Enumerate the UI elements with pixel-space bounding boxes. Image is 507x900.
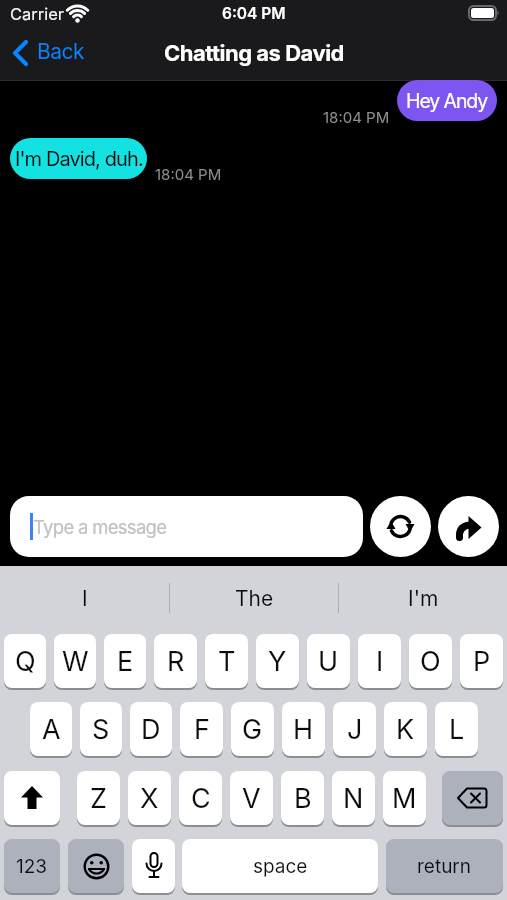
- button[interactable]: D: [130, 702, 172, 756]
- staticText: Carrier: [10, 4, 65, 24]
- button[interactable]: R: [154, 634, 197, 688]
- staticText: Z: [90, 782, 107, 815]
- button[interactable]: K: [384, 702, 427, 756]
- staticText: V: [242, 782, 261, 815]
- staticText: E: [117, 645, 134, 678]
- staticText: S: [92, 713, 110, 746]
- button[interactable]: I: [358, 634, 401, 688]
- staticText: P: [473, 645, 491, 678]
- staticText: F: [194, 713, 210, 746]
- button[interactable]: L: [435, 702, 478, 756]
- button[interactable]: G: [231, 702, 274, 756]
- button[interactable]: F: [180, 702, 223, 756]
- button[interactable]: [132, 839, 175, 893]
- staticText: A: [42, 713, 61, 746]
- button[interactable]: [438, 496, 499, 557]
- staticText: C: [191, 782, 211, 815]
- button[interactable]: Back: [37, 39, 85, 64]
- staticText: 18:04 PM: [323, 108, 390, 126]
- staticText: X: [140, 782, 159, 815]
- button[interactable]: Type a message: [10, 496, 363, 557]
- button[interactable]: W: [54, 634, 96, 688]
- button[interactable]: B: [281, 771, 324, 825]
- button[interactable]: E: [104, 634, 146, 688]
- staticText: H: [293, 713, 314, 746]
- button[interactable]: N: [332, 771, 375, 825]
- staticText: I'm: [408, 586, 439, 611]
- staticText: Q: [15, 645, 36, 678]
- button[interactable]: Y: [256, 634, 299, 688]
- staticText: D: [141, 713, 161, 746]
- staticText: Type a message: [33, 516, 167, 538]
- button[interactable]: I'm David, duh.: [10, 138, 147, 179]
- button[interactable]: S: [80, 702, 122, 756]
- button[interactable]: T: [205, 634, 248, 688]
- button[interactable]: [442, 771, 503, 825]
- staticText: B: [294, 782, 312, 815]
- staticText: M: [392, 782, 417, 815]
- button[interactable]: space: [182, 839, 378, 893]
- button[interactable]: [370, 496, 431, 557]
- button[interactable]: A: [30, 702, 72, 756]
- staticText: Hey Andy: [406, 89, 488, 113]
- staticText: W: [62, 645, 89, 678]
- button[interactable]: M: [383, 771, 426, 825]
- button[interactable]: O: [409, 634, 452, 688]
- button[interactable]: Q: [4, 634, 46, 688]
- staticText: return: [417, 855, 472, 878]
- staticText: O: [420, 645, 441, 678]
- button[interactable]: U: [307, 634, 350, 688]
- staticText: 18:04 PM: [155, 165, 222, 183]
- button[interactable]: C: [179, 771, 222, 825]
- button[interactable]: H: [282, 702, 325, 756]
- staticText: T: [218, 645, 236, 678]
- button[interactable]: P: [460, 634, 503, 688]
- staticText: I: [376, 645, 384, 678]
- button[interactable]: The: [170, 566, 338, 630]
- staticText: J: [347, 713, 363, 746]
- button[interactable]: [4, 771, 60, 825]
- staticText: K: [396, 713, 415, 746]
- button[interactable]: 123: [4, 839, 60, 893]
- button[interactable]: V: [230, 771, 273, 825]
- staticText: 123: [16, 855, 48, 878]
- button[interactable]: Z: [77, 771, 120, 825]
- staticText: The: [235, 586, 274, 611]
- button[interactable]: [68, 839, 124, 893]
- staticText: N: [343, 782, 364, 815]
- button[interactable]: X: [128, 771, 171, 825]
- button[interactable]: Hey Andy: [397, 80, 497, 121]
- button[interactable]: return: [386, 839, 503, 893]
- staticText: U: [318, 645, 339, 678]
- button[interactable]: I'm: [339, 566, 507, 630]
- button[interactable]: I: [0, 566, 169, 630]
- staticText: I'm David, duh.: [15, 147, 143, 171]
- button[interactable]: J: [333, 702, 376, 756]
- staticText: G: [242, 713, 263, 746]
- staticText: Chatting as David: [164, 40, 344, 67]
- staticText: Y: [268, 645, 287, 678]
- staticText: space: [253, 855, 308, 878]
- staticText: I: [82, 586, 88, 611]
- staticText: R: [167, 645, 185, 678]
- button[interactable]: [12, 40, 29, 66]
- staticText: 6:04 PM: [222, 4, 286, 23]
- staticText: L: [449, 713, 465, 746]
